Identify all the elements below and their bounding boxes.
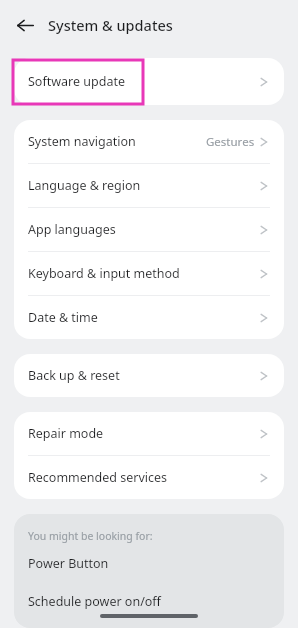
staticText: Keyboard & input method: [28, 265, 180, 282]
staticText: System navigation: [28, 133, 136, 150]
staticText: Gestures: [206, 134, 255, 150]
staticText: Back up & reset: [28, 367, 120, 384]
button[interactable]: Software update: [14, 58, 284, 105]
button[interactable]: Language & region: [14, 164, 284, 207]
staticText: You might be looking for:: [28, 529, 153, 543]
staticText: Recommended services: [28, 469, 168, 486]
button[interactable]: Back up & reset: [14, 354, 284, 397]
button[interactable]: Power Button: [14, 555, 284, 572]
staticText: App languages: [28, 221, 116, 238]
button[interactable]: Keyboard & input method: [14, 252, 284, 295]
staticText: Software update: [28, 73, 125, 90]
button[interactable]: App languages: [14, 208, 284, 251]
staticText: Date & time: [28, 309, 98, 326]
button[interactable]: Back: [8, 8, 42, 42]
staticText: System & updates: [48, 15, 173, 35]
button[interactable]: Recommended services: [14, 456, 284, 499]
button[interactable]: System navigation: [14, 120, 284, 163]
staticText: Language & region: [28, 177, 141, 194]
button[interactable]: Date & time: [14, 296, 284, 339]
button[interactable]: Repair mode: [14, 412, 284, 455]
button[interactable]: Schedule power on/off: [14, 593, 284, 610]
staticText: Repair mode: [28, 425, 104, 442]
